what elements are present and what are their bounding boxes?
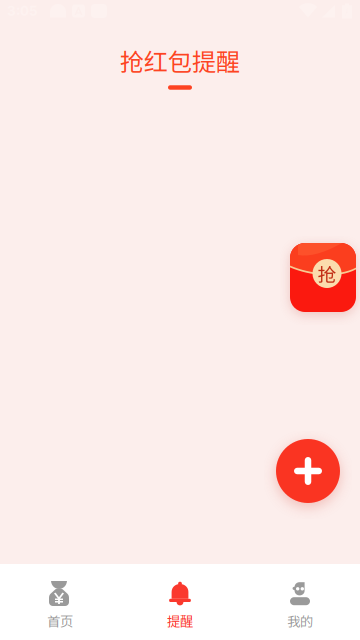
staticText: 我的 bbox=[287, 611, 313, 630]
staticText: 抢红包提醒 bbox=[120, 43, 240, 78]
staticText: 首页 bbox=[47, 611, 73, 630]
button[interactable]: 首页 bbox=[0, 564, 120, 640]
staticText: 抢 bbox=[317, 260, 336, 287]
button[interactable]: 红包悬浮窗 bbox=[290, 243, 356, 312]
button[interactable]: 我的 bbox=[240, 564, 360, 640]
button[interactable]: 提醒 bbox=[120, 564, 240, 640]
button[interactable]: 添加提醒 bbox=[276, 439, 340, 503]
staticText: 提醒 bbox=[167, 611, 193, 630]
